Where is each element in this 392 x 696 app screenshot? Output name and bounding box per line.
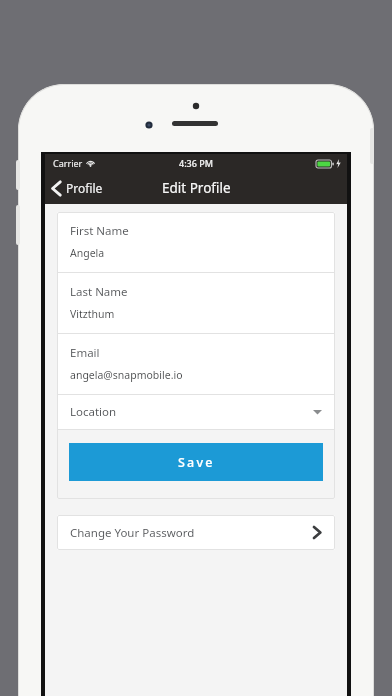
button[interactable]: Change Your Password	[57, 515, 335, 550]
button[interactable]: Save	[69, 443, 323, 481]
staticText: Location	[70, 404, 117, 420]
staticText: Vitzthum	[70, 307, 115, 321]
button[interactable]: Location	[57, 395, 335, 429]
staticText: First Name	[70, 223, 129, 239]
staticText: Save	[178, 454, 215, 471]
staticText: Last Name	[70, 284, 128, 300]
staticText: Angela	[70, 246, 105, 260]
staticText: angela@snapmobile.io	[70, 368, 183, 382]
staticText: Change Your Password	[70, 525, 195, 541]
button[interactable]: First Name	[57, 212, 335, 272]
staticText: Email	[70, 345, 100, 361]
staticText: Edit Profile	[162, 179, 231, 197]
button[interactable]: Last Name	[57, 273, 335, 333]
button[interactable]: Email	[57, 334, 335, 394]
button[interactable]: Profile	[45, 172, 113, 204]
staticText: 4:36 PM	[179, 157, 213, 169]
staticText: Profile	[66, 180, 103, 196]
staticText: Carrier	[53, 157, 83, 169]
